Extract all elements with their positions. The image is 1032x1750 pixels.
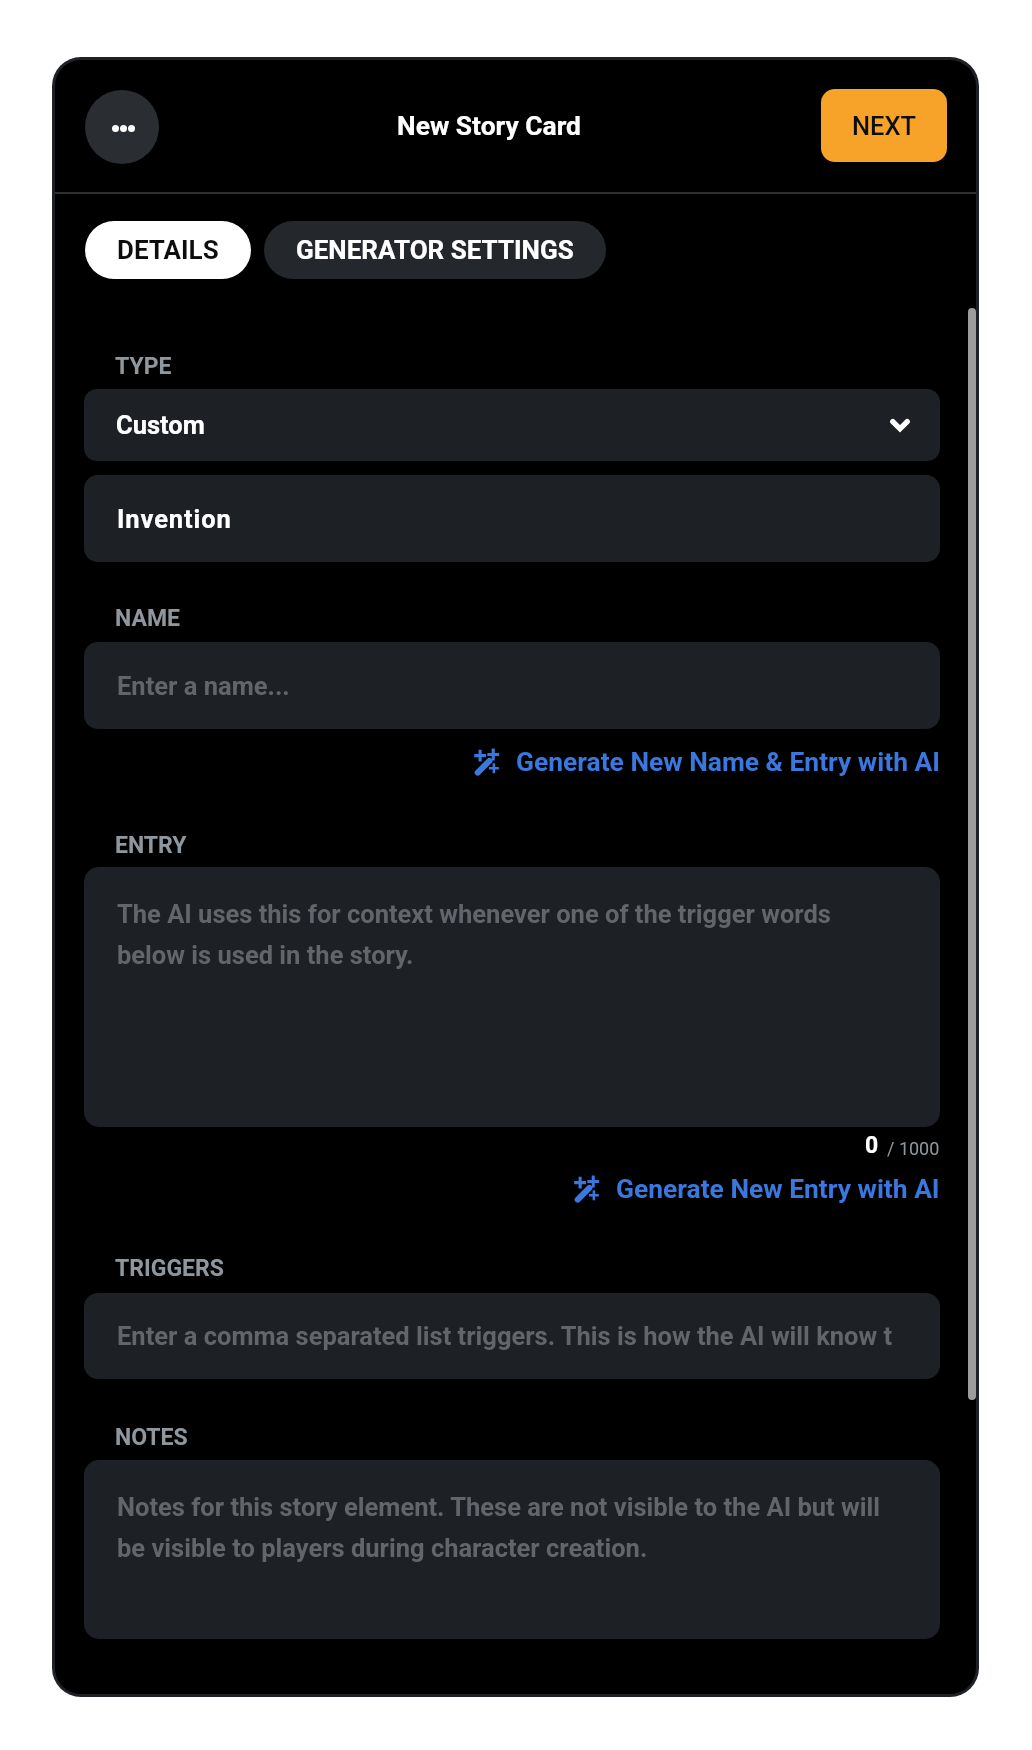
button[interactable]: Invention — [84, 475, 940, 562]
button[interactable]: The AI uses this for context whenever on… — [84, 867, 940, 1127]
staticText: TRIGGERS — [115, 1255, 224, 1282]
staticText: NEXT — [852, 111, 917, 141]
staticText: Notes for this story element. These are … — [117, 1492, 906, 1563]
staticText: Invention — [117, 504, 232, 534]
staticText: 0 — [865, 1132, 879, 1159]
button[interactable]: Generate New Entry with AI — [55, 1169, 940, 1209]
staticText: Enter a comma separated list triggers. T… — [117, 1321, 893, 1351]
staticText: DETAILS — [117, 235, 219, 265]
button[interactable]: Generate New Name & Entry with AI — [55, 742, 940, 782]
staticText: Enter a name... — [117, 671, 290, 701]
staticText: Generate New Entry with AI — [616, 1174, 940, 1205]
staticText: TYPE — [115, 353, 172, 380]
button[interactable]: Notes for this story element. These are … — [84, 1460, 940, 1639]
staticText: GENERATOR SETTINGS — [296, 235, 574, 265]
button[interactable]: NEXT — [821, 89, 947, 162]
button[interactable]: Enter a name... — [84, 642, 940, 729]
button[interactable]: DETAILS — [85, 221, 251, 279]
staticText: ENTRY — [115, 832, 187, 859]
button[interactable]: Enter a comma separated list triggers. T… — [84, 1293, 940, 1379]
button[interactable]: More options — [85, 90, 159, 164]
staticText: NOTES — [115, 1424, 188, 1451]
staticText: New Story Card — [397, 111, 581, 142]
button[interactable]: Custom — [84, 389, 940, 461]
staticText: NAME — [115, 605, 180, 632]
staticText: / 1000 — [887, 1138, 940, 1159]
staticText: Generate New Name & Entry with AI — [516, 747, 940, 778]
staticText: The AI uses this for context whenever on… — [117, 899, 864, 970]
button[interactable]: GENERATOR SETTINGS — [264, 221, 606, 279]
staticText: Custom — [116, 410, 205, 440]
